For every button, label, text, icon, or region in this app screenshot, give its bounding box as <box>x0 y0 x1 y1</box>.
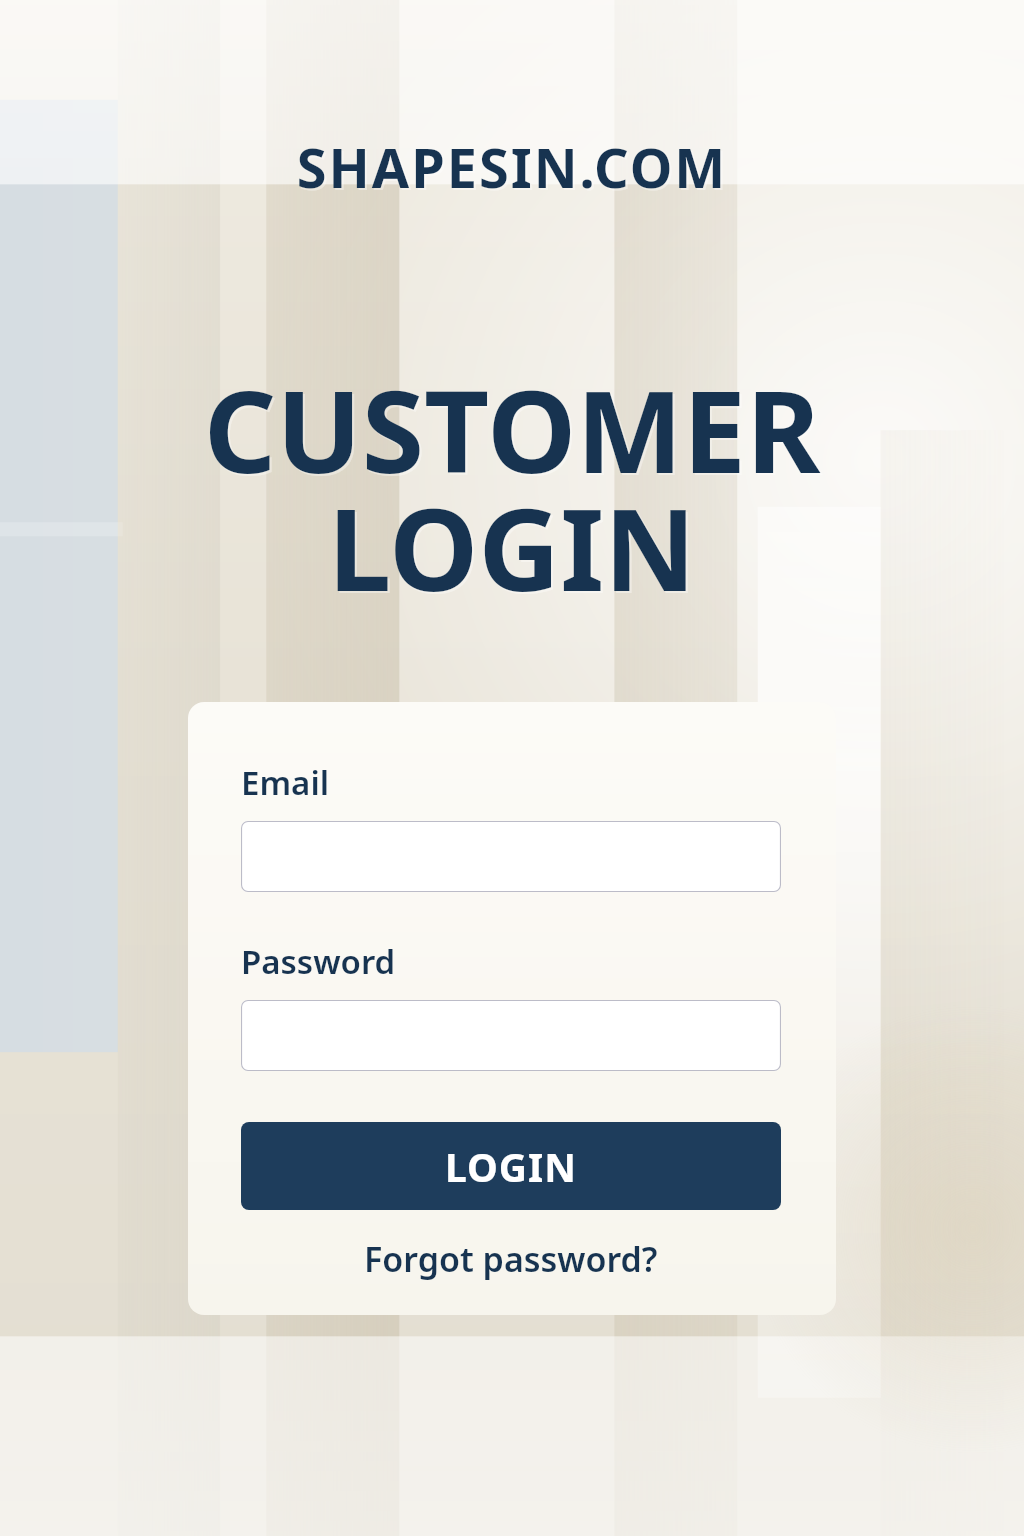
staticText: Email <box>241 760 330 805</box>
staticText: Forgot password? <box>364 1236 658 1282</box>
button[interactable]: Text field <box>241 821 781 892</box>
button[interactable]: Forgot password? <box>241 1236 781 1282</box>
staticText: LOGIN <box>445 1140 577 1193</box>
staticText: Password <box>241 939 396 984</box>
button[interactable]: LOGIN <box>241 1122 781 1210</box>
staticText: SHAPESIN.COM <box>0 130 1024 204</box>
staticText: SHAPESIN.COM <box>2 132 1024 206</box>
button[interactable]: Text field <box>241 1000 781 1071</box>
staticText: CUSTOMER LOGIN <box>2 354 1024 626</box>
staticText: CUSTOMER LOGIN <box>0 352 1024 624</box>
